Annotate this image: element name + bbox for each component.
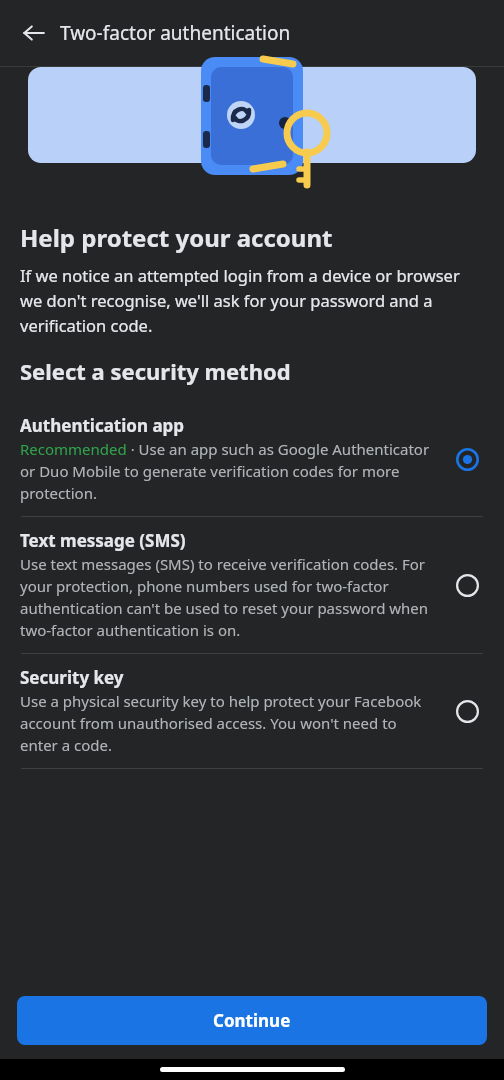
button[interactable]: Security key [20,654,484,768]
staticText: Help protect your account [20,221,333,254]
staticText: If we notice an attempted login from a d… [20,264,484,336]
staticText: Recommended · Use an app such as Google … [20,439,436,504]
staticText: Select a security method [20,356,291,386]
staticText: Text message (SMS) [20,529,186,552]
staticText: Two-factor authentication [60,20,291,46]
staticText: Continue [213,1009,291,1032]
button[interactable]: Text message (SMS) [20,517,484,653]
staticText: Use a physical security key to help prot… [20,691,436,756]
button[interactable]: Back [12,11,56,55]
staticText: Use text messages (SMS) to receive verif… [20,554,436,641]
button[interactable]: Continue [17,996,487,1045]
staticText: Security key [20,666,124,689]
button[interactable]: Authentication app [20,402,484,516]
staticText: Authentication app [20,414,185,437]
